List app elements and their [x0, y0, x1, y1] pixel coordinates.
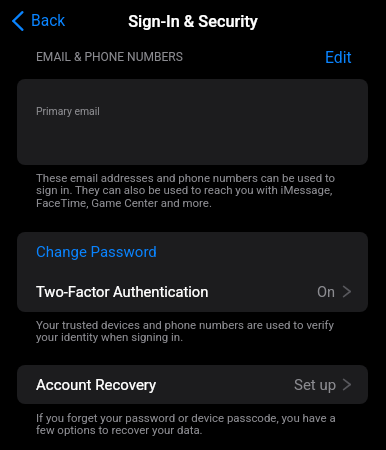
button[interactable]: Edit	[322, 46, 355, 69]
staticText: Primary email	[36, 105, 100, 117]
staticText: These email addresses and phone numbers …	[36, 171, 346, 210]
staticText: Your trusted devices and phone numbers a…	[36, 318, 346, 344]
button[interactable]: Two-Factor Authentication	[17, 271, 368, 312]
staticText: On	[317, 283, 336, 300]
staticText: Sign-In & Security	[0, 12, 386, 31]
staticText: Change Password	[36, 243, 157, 261]
staticText: Edit	[325, 48, 352, 67]
button[interactable]: Primary email	[17, 79, 368, 165]
button[interactable]: Change Password	[17, 232, 368, 271]
staticText: Account Recovery	[36, 376, 157, 394]
staticText: Set up	[294, 376, 337, 394]
staticText: If you forget your password or device pa…	[36, 411, 346, 437]
button[interactable]: Back	[8, 8, 70, 34]
button[interactable]: Account Recovery	[17, 365, 368, 404]
staticText: Back	[31, 12, 66, 30]
staticText: EMAIL & PHONE NUMBERS	[36, 50, 183, 64]
staticText: Two-Factor Authentication	[36, 283, 209, 300]
